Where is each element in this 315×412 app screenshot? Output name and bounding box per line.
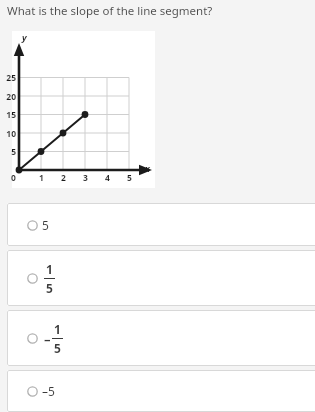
staticText: 3 bbox=[83, 172, 88, 184]
staticText: 4 bbox=[105, 172, 110, 184]
staticText: 5 bbox=[42, 217, 49, 233]
staticText: 1 bbox=[54, 321, 61, 337]
staticText: 5 bbox=[11, 146, 16, 158]
button[interactable]: Select answer bbox=[7, 370, 315, 412]
other: Select answer bbox=[27, 273, 38, 284]
other: Select answer bbox=[27, 386, 38, 397]
other: Select answer bbox=[27, 333, 38, 344]
staticText: What is the slope of the line segment? bbox=[7, 3, 213, 19]
staticText: 2 bbox=[61, 172, 66, 184]
staticText: 25 bbox=[6, 72, 16, 84]
staticText: –5 bbox=[42, 383, 55, 399]
staticText: x bbox=[145, 162, 150, 174]
staticText: y bbox=[22, 31, 27, 43]
other: Select answer bbox=[27, 220, 38, 231]
staticText: 20 bbox=[6, 91, 16, 103]
staticText: 5 bbox=[54, 340, 61, 356]
staticText: 1 bbox=[46, 261, 53, 277]
staticText: 5 bbox=[46, 280, 53, 296]
staticText: 10 bbox=[6, 128, 16, 140]
button[interactable]: Select answer bbox=[7, 250, 315, 306]
button[interactable]: Select answer bbox=[7, 203, 315, 246]
staticText: 5 bbox=[127, 172, 132, 184]
button[interactable]: Select answer bbox=[7, 310, 315, 366]
staticText: – bbox=[44, 330, 51, 348]
staticText: 1 bbox=[39, 172, 44, 184]
staticText: 15 bbox=[6, 109, 16, 121]
staticText: 0 bbox=[11, 172, 16, 184]
